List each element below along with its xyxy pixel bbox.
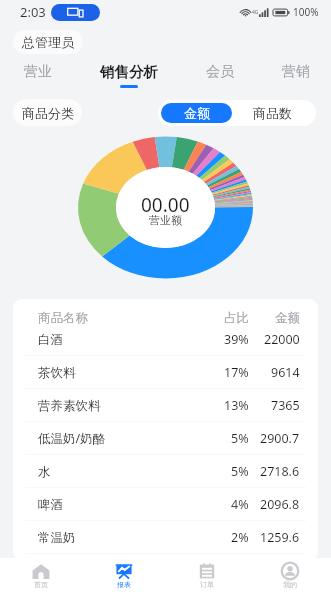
staticText: 白酒 — [38, 332, 63, 348]
staticText: 1259.6 — [260, 529, 300, 546]
staticText: 常温奶 — [38, 530, 76, 546]
staticText: 总管理员 — [22, 34, 74, 50]
staticText: 100% — [293, 5, 319, 19]
button[interactable]: 营养素饮料 — [13, 389, 318, 422]
staticText: 00.00 — [141, 192, 190, 218]
staticText: 会员 — [206, 63, 234, 81]
button[interactable]: 会员 — [206, 58, 234, 92]
staticText: 销售分析 — [100, 63, 158, 81]
button[interactable]: 水 — [13, 455, 318, 488]
button[interactable]: 茶饮料 — [13, 356, 318, 389]
staticText: 营业 — [24, 63, 52, 81]
staticText: 2:03 — [20, 3, 46, 21]
staticText: 7365 — [271, 397, 300, 414]
button[interactable]: 商品数 — [232, 103, 313, 123]
staticText: 金额 — [184, 105, 210, 121]
button[interactable]: 报表 — [82, 558, 165, 594]
staticText: 金额 — [275, 310, 300, 326]
staticText: 13% — [224, 397, 249, 414]
button[interactable]: 常温奶 — [13, 521, 318, 554]
staticText: 我的 — [283, 580, 297, 589]
button[interactable]: 低温奶/奶酪 — [13, 422, 318, 455]
staticText: 营业额 — [149, 213, 182, 227]
staticText: 啤酒 — [38, 497, 63, 513]
staticText: 4% — [231, 496, 249, 513]
staticText: 占比 — [224, 310, 249, 326]
staticText: 首页 — [34, 580, 48, 589]
button[interactable]: 商品分类 — [13, 99, 82, 126]
staticText: 2900.7 — [260, 430, 300, 447]
button[interactable]: 我的 — [248, 558, 331, 594]
staticText: 商品名称 — [38, 310, 88, 326]
button[interactable]: 订单 — [165, 558, 248, 594]
staticText: 5% — [231, 463, 249, 480]
staticText: 报表 — [117, 580, 131, 589]
staticText: 39% — [224, 331, 249, 348]
staticText: 营销 — [282, 63, 310, 81]
button[interactable]: 啤酒 — [13, 488, 318, 521]
staticText: 9614 — [271, 364, 300, 381]
button[interactable]: 营业 — [24, 58, 52, 92]
staticText: 低温奶/奶酪 — [38, 430, 106, 447]
staticText: 4G — [252, 9, 259, 16]
staticText: 商品数 — [253, 105, 292, 121]
staticText: 2718.6 — [260, 463, 300, 480]
staticText: 5% — [231, 430, 249, 447]
staticText: 2% — [231, 529, 249, 546]
staticText: 营养素饮料 — [38, 398, 101, 414]
staticText: 订单 — [200, 580, 214, 589]
staticText: 茶饮料 — [38, 365, 76, 381]
staticText: 17% — [224, 364, 249, 381]
button[interactable]: 金额 — [161, 103, 232, 123]
staticText: 商品分类 — [22, 105, 74, 121]
button[interactable]: 总管理员 — [13, 30, 83, 54]
button[interactable]: 营销 — [282, 58, 310, 92]
button[interactable]: 首页 — [0, 558, 82, 594]
staticText: 水 — [38, 464, 51, 480]
staticText: 22000 — [264, 331, 300, 348]
staticText: 2096.8 — [260, 496, 300, 513]
button[interactable]: 销售分析 — [100, 58, 158, 92]
button[interactable]: 白酒 — [13, 323, 318, 356]
